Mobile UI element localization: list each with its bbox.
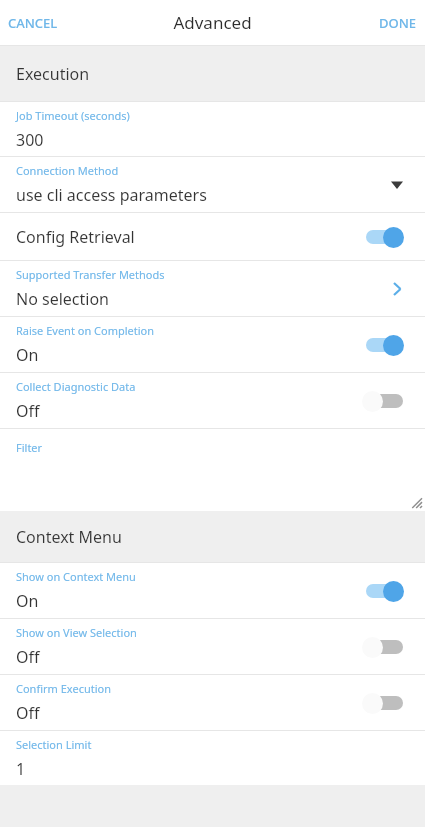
button[interactable]: Open selection (385, 277, 409, 301)
staticText: Off (16, 400, 40, 422)
staticText: 1 (16, 758, 26, 780)
button[interactable]: Show on Context Menu (0, 563, 425, 618)
staticText: Collect Diagnostic Data (16, 379, 136, 394)
staticText: Show on Context Menu (16, 569, 136, 584)
staticText: CANCEL (8, 14, 58, 32)
staticText: Raise Event on Completion (16, 323, 154, 338)
staticText: Supported Transfer Methods (16, 267, 165, 282)
staticText: DONE (379, 14, 417, 32)
button[interactable]: Connection Method (0, 157, 425, 212)
button[interactable]: Filter (0, 429, 425, 511)
staticText: Filter (16, 440, 43, 455)
button[interactable]: Open dropdown (385, 173, 409, 197)
button[interactable]: Confirm Execution (0, 675, 425, 730)
staticText: Config Retrieval (16, 226, 361, 248)
staticText: Advanced (173, 11, 252, 34)
staticText: On (16, 344, 39, 366)
staticText: Job Timeout (seconds) (16, 108, 130, 123)
button[interactable]: CANCEL (0, 6, 70, 40)
staticText: Selection Limit (16, 737, 92, 752)
staticText: 300 (16, 129, 44, 151)
staticText: Off (16, 646, 40, 668)
staticText: Context Menu (16, 526, 122, 548)
staticText: On (16, 590, 39, 612)
button[interactable]: Job Timeout (seconds) (0, 102, 425, 156)
staticText: No selection (16, 288, 109, 310)
button[interactable]: Config Retrieval (0, 213, 425, 260)
button[interactable]: Collect Diagnostic Data (0, 373, 425, 428)
staticText: Show on View Selection (16, 625, 137, 640)
button[interactable]: DONE (367, 6, 425, 40)
button[interactable]: Raise Event on Completion (0, 317, 425, 372)
staticText: Off (16, 702, 40, 724)
button[interactable]: Show on View Selection (0, 619, 425, 674)
button[interactable]: Supported Transfer Methods (0, 261, 425, 316)
staticText: Connection Method (16, 163, 119, 178)
button[interactable]: Selection Limit (0, 731, 425, 785)
staticText: use cli access parameters (16, 184, 207, 206)
staticText: Confirm Execution (16, 681, 111, 696)
staticText: Execution (16, 63, 90, 85)
